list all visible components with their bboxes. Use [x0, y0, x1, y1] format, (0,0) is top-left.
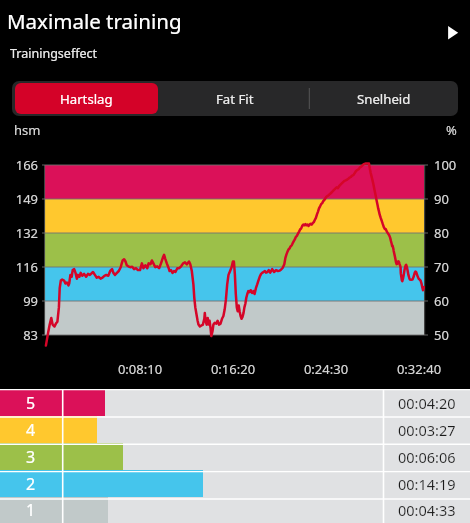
staticText: 0:24:30: [281, 360, 371, 378]
staticText: 00:04:20: [398, 393, 456, 413]
staticText: Maximale training: [7, 7, 182, 35]
staticText: Fat Fit: [216, 90, 254, 108]
button[interactable]: Snelheid: [309, 81, 458, 116]
button[interactable]: Play: [437, 15, 469, 47]
button[interactable]: Fat Fit: [160, 81, 309, 116]
staticText: 0:32:40: [374, 360, 464, 378]
staticText: 50: [434, 326, 449, 344]
staticText: 132: [0, 224, 38, 242]
button[interactable]: 4: [0, 416, 470, 443]
staticText: 83: [0, 326, 38, 344]
staticText: 100: [434, 156, 457, 174]
button[interactable]: 2: [0, 470, 470, 497]
staticText: 80: [434, 224, 449, 242]
staticText: Trainingseffect: [10, 45, 98, 62]
button[interactable]: Hartslag: [12, 81, 160, 116]
staticText: 3: [26, 446, 36, 468]
staticText: 90: [434, 190, 449, 208]
staticText: 1: [26, 499, 36, 521]
staticText: 116: [0, 258, 38, 276]
staticText: Snelheid: [357, 90, 411, 108]
button[interactable]: 1: [0, 497, 470, 523]
staticText: 149: [0, 190, 38, 208]
staticText: 166: [0, 156, 38, 174]
staticText: 60: [434, 292, 449, 310]
staticText: 70: [434, 258, 449, 276]
staticText: %: [446, 121, 457, 139]
staticText: 00:14:19: [398, 474, 456, 494]
staticText: 00:06:06: [398, 447, 456, 467]
staticText: 2: [26, 473, 36, 495]
staticText: Hartslag: [60, 90, 113, 108]
button[interactable]: 3: [0, 443, 470, 470]
staticText: 0:08:10: [95, 360, 185, 378]
staticText: 5: [26, 392, 36, 414]
button[interactable]: 5: [0, 389, 470, 416]
staticText: 99: [0, 292, 38, 310]
staticText: 00:03:27: [398, 420, 456, 440]
staticText: 4: [26, 419, 36, 441]
staticText: 0:16:20: [188, 360, 278, 378]
staticText: hsm: [14, 121, 41, 139]
staticText: 00:04:33: [398, 500, 456, 520]
